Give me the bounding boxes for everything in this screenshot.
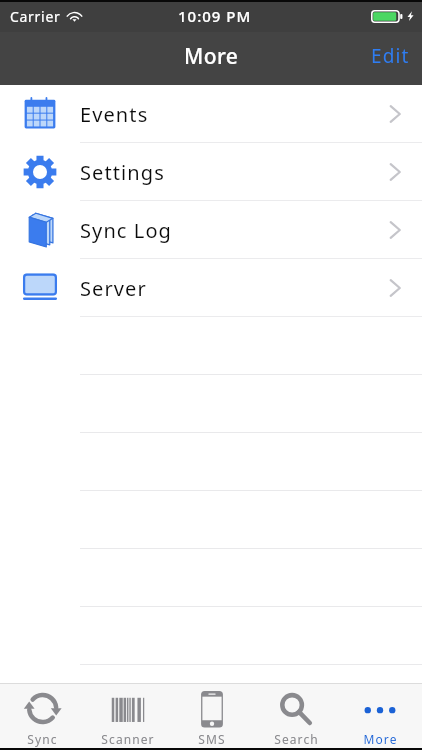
staticText: Settings — [80, 159, 165, 186]
button[interactable]: More — [338, 684, 422, 748]
staticText: SMS — [198, 731, 226, 747]
button[interactable]: Search — [254, 684, 338, 748]
staticText: Sync — [27, 731, 58, 747]
button[interactable]: Events — [0, 85, 422, 143]
staticText: Events — [80, 101, 149, 128]
staticText: More — [184, 42, 239, 71]
button[interactable]: Sync — [0, 684, 85, 748]
staticText: Scanner — [101, 731, 155, 747]
button[interactable]: Server — [0, 259, 422, 317]
staticText: Sync Log — [80, 217, 173, 244]
button[interactable]: Edit — [359, 33, 422, 79]
staticText: Edit — [371, 43, 410, 69]
staticText: Server — [80, 275, 147, 302]
button[interactable]: Settings — [0, 143, 422, 201]
staticText: More — [363, 731, 398, 747]
staticText: Search — [274, 731, 319, 747]
staticText: Carrier — [10, 7, 61, 26]
staticText: 10:09 PM — [178, 6, 252, 26]
button[interactable]: SMS — [170, 684, 254, 748]
button[interactable]: Sync Log — [0, 201, 422, 259]
button[interactable]: Scanner — [85, 684, 170, 748]
